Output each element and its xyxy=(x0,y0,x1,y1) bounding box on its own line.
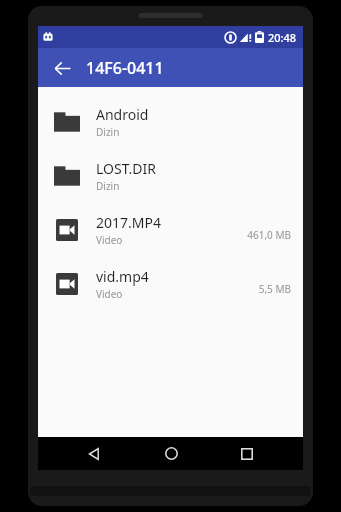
button[interactable]: 2017.MP4 xyxy=(38,203,303,257)
staticText: 14F6-0411 xyxy=(86,57,164,79)
staticText: 20:48 xyxy=(268,30,297,45)
button[interactable]: Recent apps xyxy=(227,437,267,470)
button[interactable]: vid.mp4 xyxy=(38,257,303,311)
button[interactable]: Back xyxy=(74,437,114,470)
staticText: LOST.DIR xyxy=(96,159,157,178)
staticText: 2017.MP4 xyxy=(96,213,161,232)
staticText: Dizin xyxy=(96,125,120,139)
staticText: 5,5 MB xyxy=(258,282,291,296)
staticText: Video xyxy=(96,287,123,301)
staticText: 461,0 MB xyxy=(247,228,291,242)
button[interactable]: Android xyxy=(38,95,303,149)
staticText: Video xyxy=(96,233,123,247)
button[interactable]: Home xyxy=(151,437,191,470)
button[interactable]: Back xyxy=(46,52,78,84)
button[interactable]: LOST.DIR xyxy=(38,149,303,203)
staticText: Android xyxy=(96,105,149,124)
staticText: vid.mp4 xyxy=(96,267,149,286)
staticText: Dizin xyxy=(96,179,120,193)
